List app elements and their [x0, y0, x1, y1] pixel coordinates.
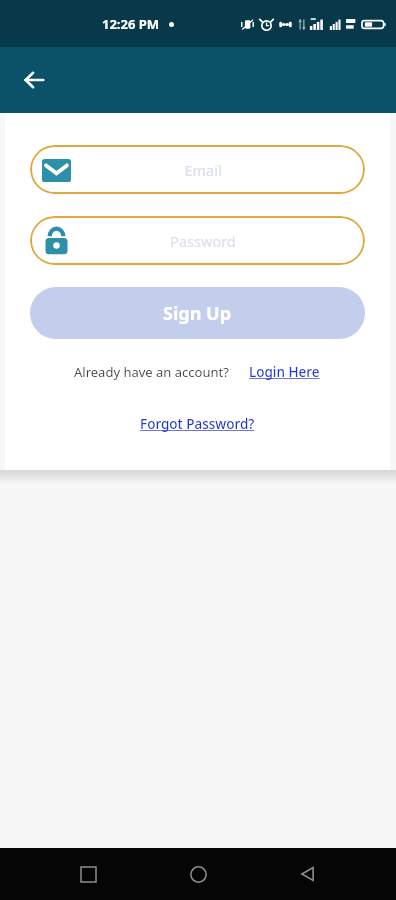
- button[interactable]: Email: [30, 145, 365, 194]
- staticText: Already have an account?: [74, 363, 229, 381]
- button[interactable]: Back: [12, 58, 56, 102]
- staticText: Email: [184, 160, 222, 180]
- staticText: Login Here: [249, 363, 320, 381]
- staticText: Sign Up: [163, 301, 232, 326]
- button[interactable]: Back: [286, 852, 330, 896]
- button[interactable]: Recent apps: [66, 852, 110, 896]
- button[interactable]: Forgot Password?: [136, 413, 259, 435]
- staticText: Forgot Password?: [140, 415, 255, 433]
- button[interactable]: Password: [30, 216, 365, 265]
- button[interactable]: Login Here: [247, 361, 322, 383]
- staticText: 12:26 PM: [102, 15, 160, 33]
- staticText: Password: [170, 231, 236, 251]
- button[interactable]: Home: [176, 852, 220, 896]
- button[interactable]: Sign Up: [30, 287, 365, 339]
